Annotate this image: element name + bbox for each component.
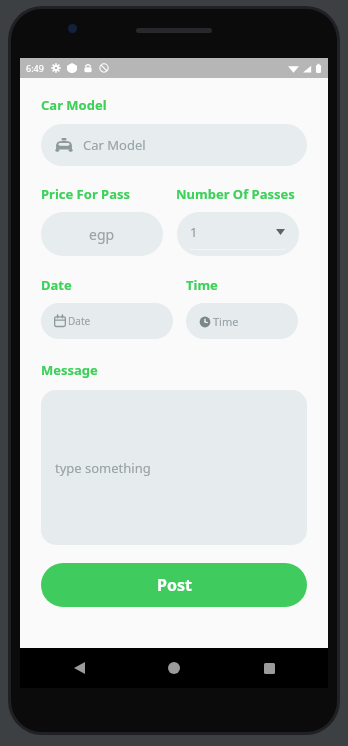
staticText: Car Model: [83, 136, 146, 154]
button[interactable]: Post: [41, 563, 307, 607]
button[interactable]: type something: [41, 390, 307, 545]
staticText: Date: [41, 276, 72, 294]
staticText: Post: [157, 574, 192, 596]
staticText: Message: [41, 361, 98, 379]
button[interactable]: Time: [186, 303, 298, 339]
staticText: type something: [55, 459, 151, 477]
staticText: Time: [213, 314, 239, 329]
staticText: 6:49: [26, 62, 44, 74]
button[interactable]: Home: [161, 655, 187, 681]
staticText: 1: [190, 223, 198, 241]
button[interactable]: Back: [66, 655, 92, 681]
staticText: Price For Pass: [41, 185, 130, 203]
button[interactable]: 1: [177, 212, 299, 256]
staticText: egp: [89, 225, 115, 244]
staticText: Number Of Passes: [176, 185, 295, 203]
button[interactable]: Recent apps: [256, 655, 282, 681]
staticText: Car Model: [41, 96, 107, 114]
button[interactable]: egp: [41, 212, 163, 256]
staticText: Date: [68, 314, 91, 328]
staticText: Time: [186, 276, 218, 294]
button[interactable]: Car Model: [41, 124, 307, 166]
button[interactable]: Date: [41, 303, 173, 339]
